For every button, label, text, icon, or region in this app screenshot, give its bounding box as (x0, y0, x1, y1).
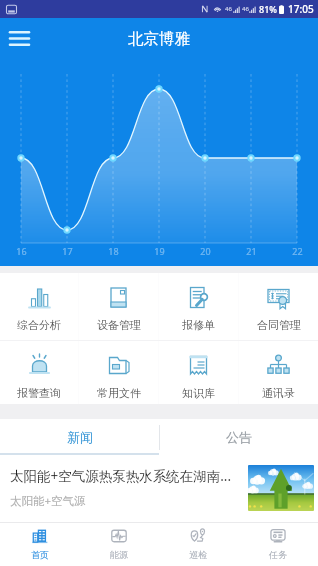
button[interactable]: 新闻 (0, 419, 159, 455)
button[interactable]: 太阳能+空气源热泵热水系统在湖南... (0, 455, 318, 521)
button[interactable]: 巡检 (158, 523, 238, 566)
button[interactable]: 综合分析 (0, 273, 78, 340)
staticText: 首页 (31, 549, 49, 560)
staticText: 合同管理 (257, 318, 301, 332)
staticText: 知识库 (182, 386, 215, 400)
button[interactable]: 首页 (0, 523, 79, 566)
staticText: 常用文件 (97, 386, 141, 400)
staticText: 太阳能+空气源热泵热水系统在湖南... (10, 467, 232, 485)
staticText: 通讯录 (262, 386, 295, 400)
staticText: 北京博雅 (128, 29, 190, 49)
button[interactable]: 能源 (79, 523, 158, 566)
staticText: 21 (246, 245, 257, 257)
staticText: 综合分析 (17, 318, 61, 332)
button[interactable]: Menu (0, 18, 38, 63)
button[interactable]: 通讯录 (239, 341, 318, 404)
button[interactable]: 报警查询 (0, 341, 78, 404)
staticText: 22 (292, 245, 303, 257)
staticText: 报警查询 (17, 386, 61, 400)
staticText: 报修单 (182, 318, 215, 332)
button[interactable]: 设备管理 (79, 273, 158, 340)
staticText: 20 (200, 245, 211, 257)
staticText: 能源 (110, 549, 128, 560)
button[interactable]: 合同管理 (239, 273, 318, 340)
staticText: 17 (62, 245, 73, 257)
button[interactable]: 任务 (238, 523, 318, 566)
button[interactable]: 知识库 (159, 341, 238, 404)
staticText: 新闻 (67, 429, 93, 445)
button[interactable]: 公告 (159, 419, 318, 455)
staticText: 18 (108, 245, 119, 257)
staticText: 46 (242, 5, 249, 13)
staticText: 任务 (269, 549, 287, 560)
staticText: 19 (154, 245, 165, 257)
button[interactable]: 常用文件 (79, 341, 158, 404)
staticText: 17:05 (288, 2, 314, 16)
staticText: 巡检 (189, 549, 207, 560)
staticText: 16 (16, 245, 27, 257)
staticText: 81% (259, 3, 277, 15)
button[interactable]: 报修单 (159, 273, 238, 340)
staticText: 公告 (226, 429, 252, 445)
staticText: 设备管理 (97, 318, 141, 332)
staticText: 46 (225, 5, 232, 13)
staticText: 太阳能+空气源 (10, 493, 86, 509)
